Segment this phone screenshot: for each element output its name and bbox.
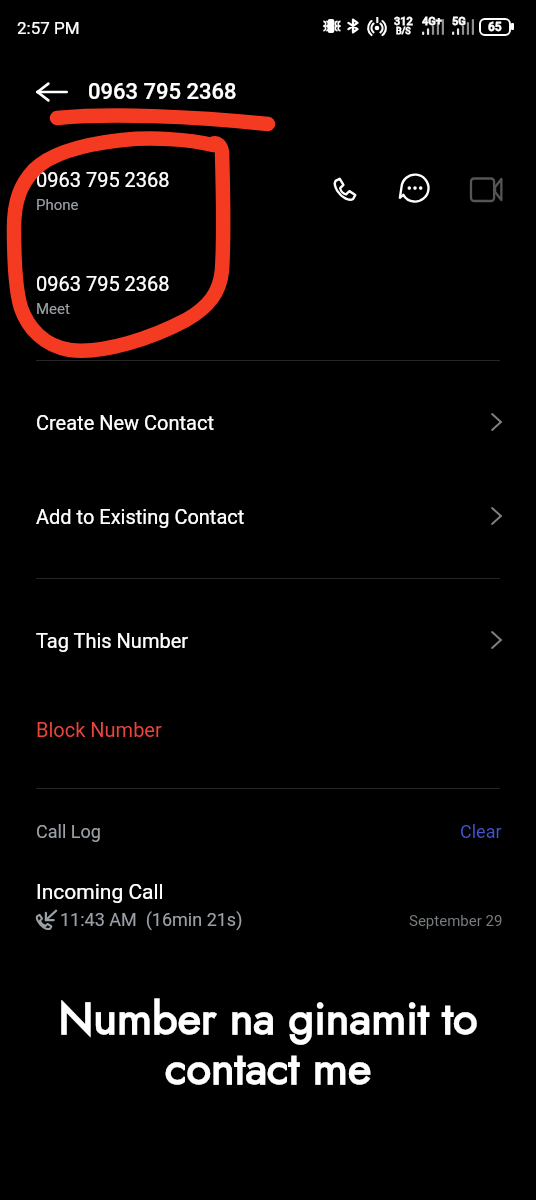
staticText: Create New Contact [36, 411, 491, 434]
staticText: September 29 [409, 912, 503, 930]
button[interactable]: Block Number [0, 698, 536, 760]
staticText: Phone [36, 196, 79, 214]
staticText: Block Number [36, 718, 502, 741]
staticText: 312 [394, 15, 413, 28]
button[interactable]: Tag This Number [0, 609, 536, 671]
button[interactable]: Incoming Call [0, 880, 536, 940]
staticText: 2:57 PM [17, 18, 80, 38]
staticText: Incoming Call [36, 880, 164, 905]
button[interactable]: Add to Existing Contact [0, 485, 536, 547]
button[interactable]: 0963 795 2368 [0, 267, 536, 327]
staticText: 4G+ [422, 15, 442, 28]
button[interactable]: Message [397, 171, 433, 207]
button[interactable]: Video call [468, 171, 504, 207]
button[interactable]: 0963 795 2368 [0, 163, 536, 223]
staticText: Number na ginamit to contact me [0, 986, 536, 1101]
button[interactable]: Clear [454, 814, 508, 849]
staticText: Call Log [36, 821, 454, 842]
staticText: Clear [460, 821, 502, 842]
button[interactable]: Call [326, 171, 362, 207]
staticText: 11:43 AM (16min 21s) [60, 909, 243, 930]
staticText: 5G [452, 15, 466, 28]
button[interactable]: Back [21, 62, 81, 122]
staticText: 0963 795 2368 [88, 79, 237, 105]
staticText: Add to Existing Contact [36, 505, 491, 528]
staticText: B/S [396, 26, 411, 37]
staticText: 65 [488, 20, 502, 34]
staticText: Tag This Number [36, 629, 491, 652]
button[interactable]: Create New Contact [0, 391, 536, 453]
staticText: 0963 795 2368 [36, 168, 170, 191]
staticText: 0963 795 2368 [36, 272, 170, 295]
staticText: Meet [36, 300, 70, 318]
